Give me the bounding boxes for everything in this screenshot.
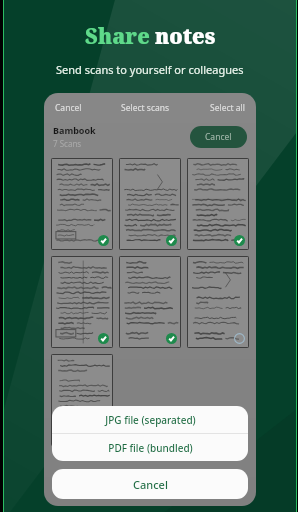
staticText: Share xyxy=(85,22,150,51)
button[interactable]: Cancel xyxy=(53,100,84,116)
button[interactable]: Scan 4 xyxy=(51,256,113,348)
staticText: Select all xyxy=(210,102,245,114)
staticText: 7 Scans xyxy=(53,138,82,149)
button[interactable]: Scan 6 xyxy=(187,256,249,348)
staticText: JPG file (separated) xyxy=(105,413,196,427)
staticText: Send scans to yourself or colleagues xyxy=(56,62,244,77)
staticText: Cancel xyxy=(55,102,82,114)
button[interactable]: Cancel xyxy=(190,126,247,148)
button[interactable]: Scan 2 xyxy=(119,158,181,250)
button[interactable]: Select all xyxy=(208,100,247,116)
button[interactable]: Scan 5 xyxy=(119,256,181,348)
staticText: Bambook xyxy=(53,124,96,136)
button[interactable]: Scan 1 xyxy=(51,158,113,250)
button[interactable]: Scan 7 xyxy=(51,354,113,446)
staticText: Cancel xyxy=(205,131,232,143)
button[interactable]: JPG file (separated) xyxy=(52,406,248,433)
staticText: Select scans xyxy=(121,102,170,114)
button[interactable]: Cancel xyxy=(52,469,248,499)
staticText: PDF file (bundled) xyxy=(108,441,193,455)
staticText: Cancel xyxy=(133,477,168,492)
button[interactable]: Scan 3 xyxy=(187,158,249,250)
button[interactable]: PDF file (bundled) xyxy=(52,434,248,461)
staticText: notes xyxy=(155,22,216,51)
